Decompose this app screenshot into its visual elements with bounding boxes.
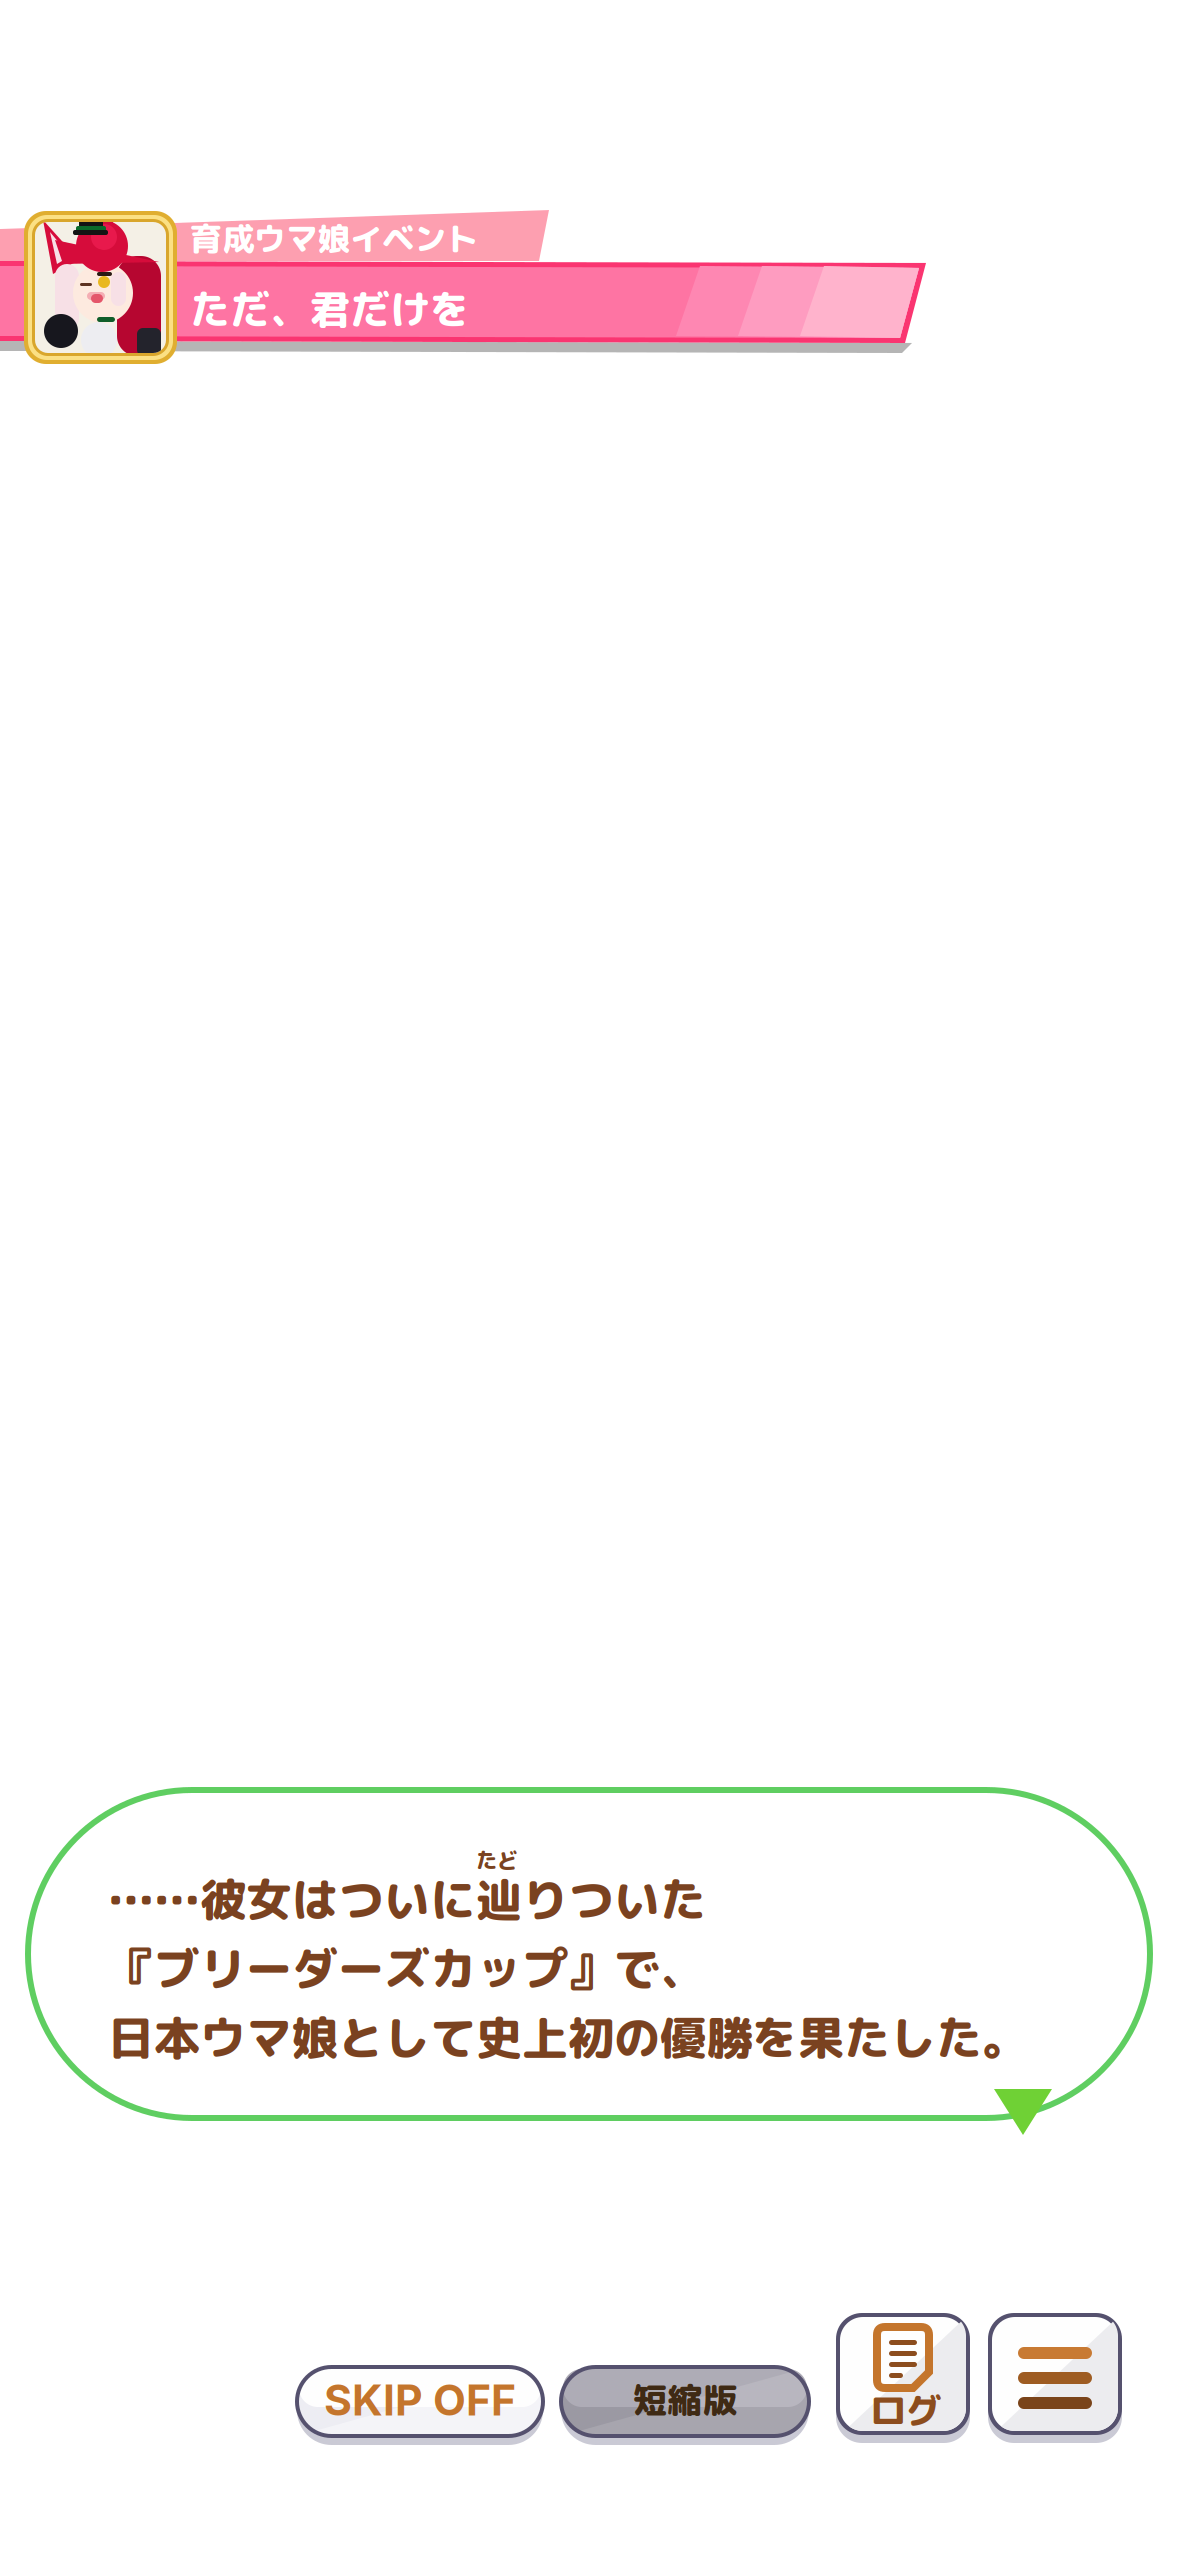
staticText: たど (476, 1845, 518, 1875)
staticText: ログ (870, 2385, 942, 2435)
button[interactable]: メニュー (988, 2313, 1122, 2443)
button[interactable]: SKIP OFF (297, 2367, 543, 2445)
button[interactable]: ログ (836, 2313, 970, 2443)
staticText: ただ、君だけを (190, 281, 470, 337)
staticText: 『ブリーダーズカップ』で、 (108, 1936, 706, 2000)
staticText: SKIP OFF (324, 2374, 516, 2426)
staticText: 日本ウマ娘として史上初の優勝を果たした。 (108, 2005, 1028, 2069)
staticText: 短縮版 (632, 2376, 737, 2424)
button[interactable]: 短縮版 (561, 2367, 809, 2445)
staticText: 育成ウマ娘イベント (190, 216, 478, 261)
staticText: ……彼女はついに辿りついた (108, 1867, 706, 1931)
